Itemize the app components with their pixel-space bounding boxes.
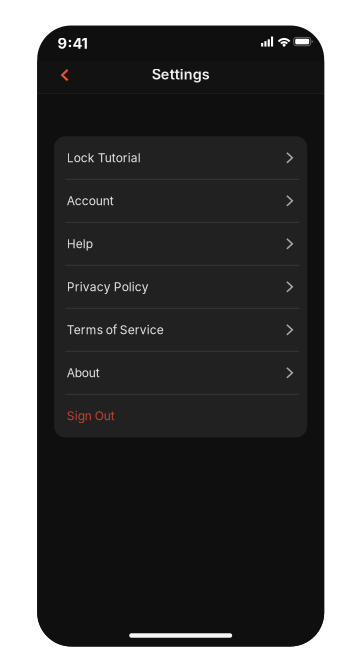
button[interactable]: Account	[54, 179, 307, 222]
button[interactable]: About	[54, 351, 307, 394]
button[interactable]: Sign Out	[54, 394, 307, 437]
staticText: Terms of Service	[67, 322, 164, 337]
staticText: Sign Out	[67, 408, 115, 423]
button[interactable]: Help	[54, 222, 307, 265]
staticText: Help	[67, 236, 93, 251]
button[interactable]: Privacy Policy	[54, 265, 307, 308]
button[interactable]: Terms of Service	[54, 308, 307, 351]
staticText: 9:41	[57, 34, 87, 52]
staticText: About	[67, 365, 100, 380]
staticText: Account	[67, 193, 114, 208]
button[interactable]: Back	[61, 61, 91, 94]
staticText: Privacy Policy	[67, 279, 149, 294]
button[interactable]: Lock Tutorial	[54, 136, 307, 179]
staticText: Lock Tutorial	[67, 150, 141, 165]
staticText: Settings	[152, 66, 210, 83]
